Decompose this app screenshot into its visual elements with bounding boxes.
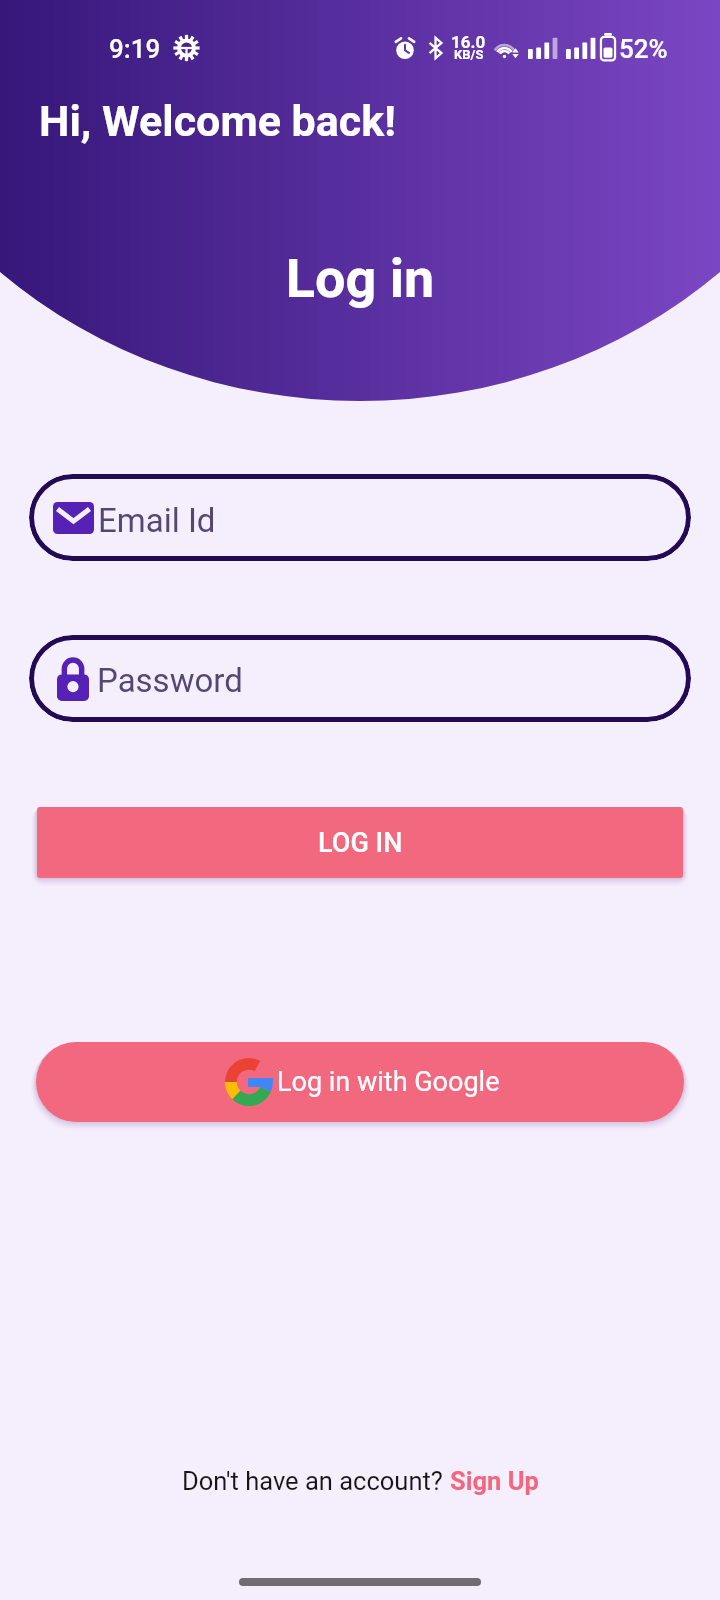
button[interactable]: LOG IN [37, 807, 683, 878]
staticText: Hi, Welcome back! [39, 96, 396, 146]
staticText: Password [97, 661, 243, 700]
staticText: 9:19 [109, 34, 161, 64]
button[interactable]: Sign Up [450, 1466, 539, 1496]
staticText: Don't have an account? [182, 1466, 450, 1496]
staticText: Email Id [98, 501, 216, 540]
button[interactable]: Email Id [29, 474, 691, 561]
staticText: Log in with Google [277, 1066, 500, 1098]
button[interactable]: Password [29, 635, 691, 722]
staticText: Sign Up [450, 1466, 539, 1496]
staticText: LOG IN [318, 827, 403, 859]
staticText: 52% [619, 34, 668, 64]
button[interactable]: Log in with Google [36, 1042, 684, 1122]
staticText: KB/S [454, 47, 484, 62]
staticText: 16.0 [451, 32, 486, 52]
staticText: Log in [0, 247, 720, 310]
